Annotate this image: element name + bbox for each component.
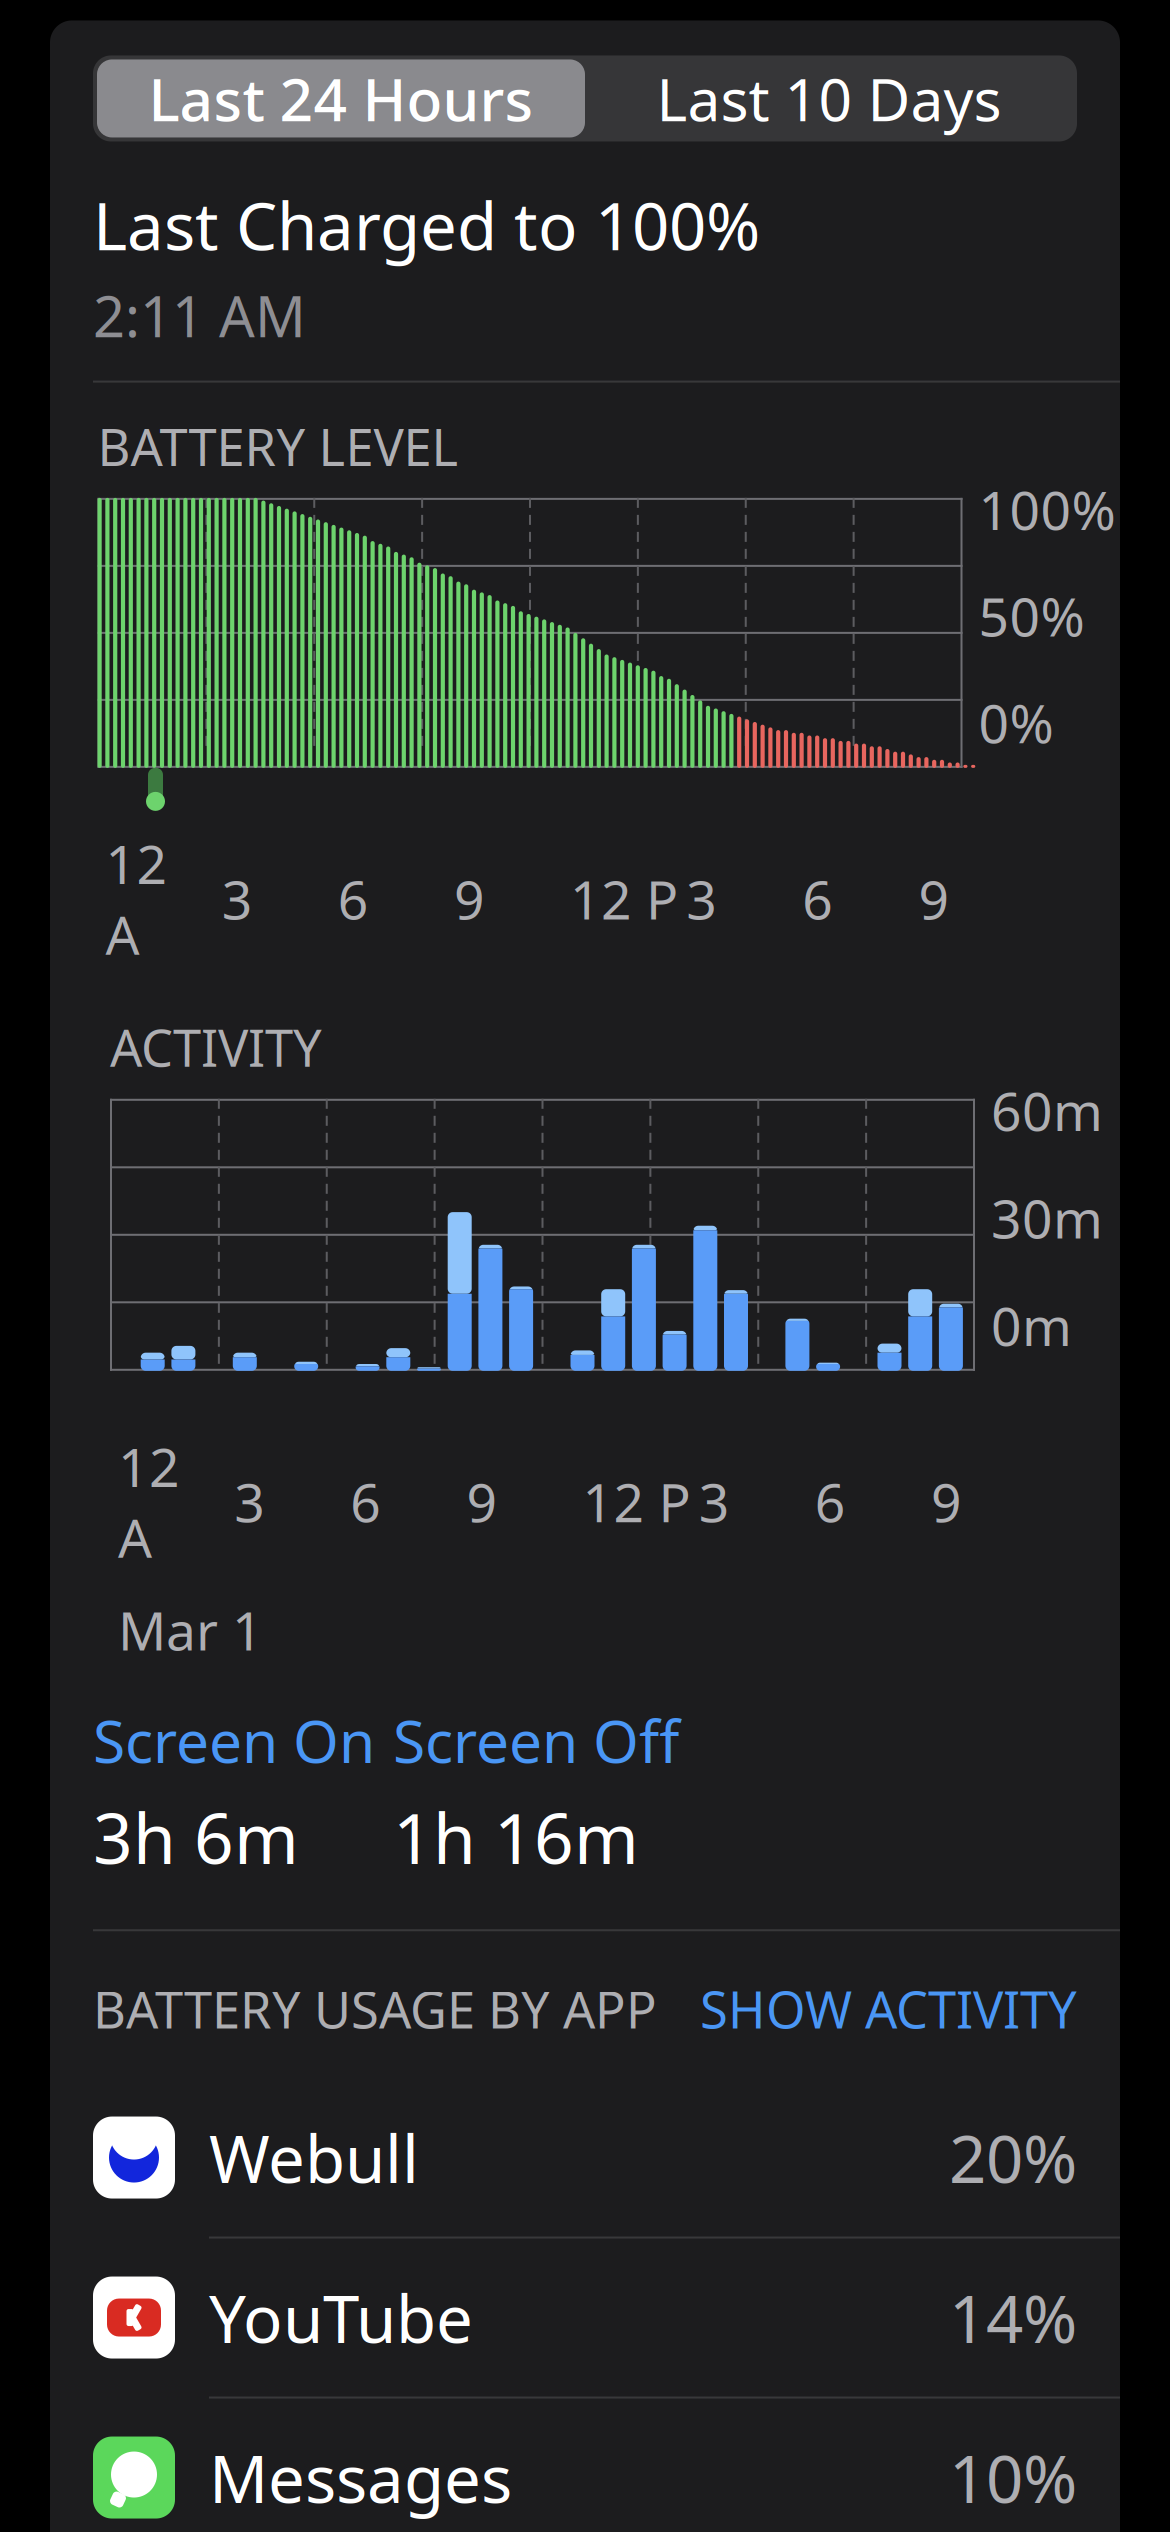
button[interactable]: Last 10 Days [585, 59, 1073, 137]
button[interactable]: YouTube [50, 2238, 1120, 2398]
button[interactable]: Messages [50, 2398, 1120, 2532]
staticText: 12 P [582, 1466, 690, 1537]
staticText: 3 [222, 863, 253, 934]
staticText: 100% [978, 474, 1115, 545]
staticText: YouTube [209, 2274, 473, 2361]
staticText: 12 A [105, 828, 167, 969]
staticText: 3 [699, 1466, 730, 1537]
staticText: 12 A [118, 1431, 180, 1572]
staticText: 60m [991, 1075, 1103, 1146]
staticText: Last 10 Days [656, 59, 1001, 137]
staticText: Screen On [93, 1701, 375, 1779]
staticText: 30m [991, 1182, 1103, 1253]
button[interactable]: SHOW ACTIVITY [680, 1965, 1077, 2053]
staticText: 6 [815, 1466, 846, 1537]
staticText: 12 P [570, 863, 678, 934]
staticText: 6 [350, 1466, 381, 1537]
staticText: 14% [949, 2274, 1077, 2361]
staticText: 6 [338, 863, 369, 934]
button[interactable]: Last 24 Hours [97, 59, 585, 137]
staticText: 9 [466, 1466, 497, 1537]
staticText: 0m [991, 1290, 1072, 1361]
staticText: ACTIVITY [110, 1013, 322, 1081]
staticText: 3 [686, 863, 717, 934]
staticText: 1h 16m [393, 1791, 639, 1883]
staticText: 9 [918, 863, 949, 934]
staticText: 2:11 AM [93, 278, 306, 353]
staticText: 50% [978, 580, 1084, 651]
staticText: 3 [234, 1466, 265, 1537]
button[interactable]: Webull [50, 2078, 1120, 2238]
staticText: Messages [209, 2434, 512, 2521]
staticText: 0% [978, 687, 1053, 758]
staticText: BATTERY LEVEL [97, 413, 458, 480]
staticText: Last 24 Hours [148, 59, 533, 137]
staticText: 9 [931, 1466, 962, 1537]
staticText: Last Charged to 100% [93, 181, 760, 268]
staticText: Screen Off [393, 1701, 679, 1779]
staticText: Mar 1 [118, 1594, 263, 1665]
staticText: 3h 6m [93, 1791, 299, 1883]
staticText: 20% [949, 2114, 1077, 2201]
staticText: 9 [454, 863, 485, 934]
staticText: BATTERY USAGE BY APP [93, 1975, 657, 2043]
staticText: 10% [949, 2434, 1077, 2521]
staticText: SHOW ACTIVITY [700, 1975, 1077, 2043]
staticText: Webull [209, 2114, 419, 2201]
staticText: 6 [802, 863, 833, 934]
